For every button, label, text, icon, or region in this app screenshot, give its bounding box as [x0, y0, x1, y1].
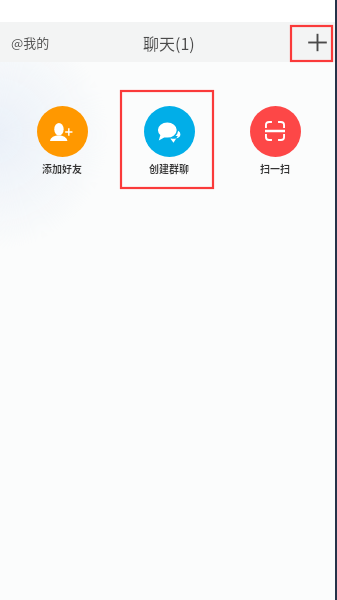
button[interactable]: Create group chat	[116, 106, 222, 175]
button[interactable]: Add friend	[9, 106, 115, 175]
staticText: 扫一扫	[260, 161, 290, 175]
staticText: @我的	[11, 33, 50, 52]
button[interactable]: Add	[297, 25, 337, 60]
staticText: 聊天(1)	[143, 31, 195, 54]
button[interactable]: Scan	[222, 106, 328, 175]
staticText: 创建群聊	[149, 161, 189, 175]
staticText: 添加好友	[42, 161, 82, 175]
button[interactable]: @我的	[0, 22, 60, 62]
